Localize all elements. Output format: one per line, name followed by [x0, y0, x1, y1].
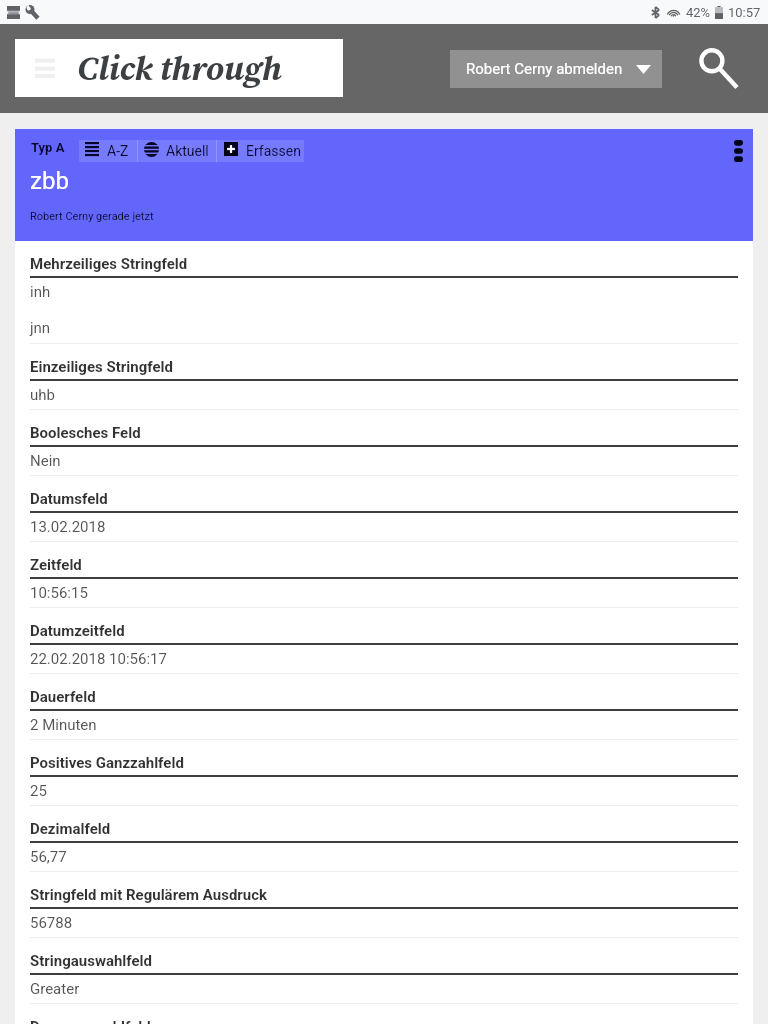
staticText: 22.02.2018 10:56:17	[30, 650, 167, 668]
staticText: jnn	[30, 319, 51, 337]
staticText: 56788	[30, 914, 73, 932]
staticText: Erfassen	[246, 143, 301, 159]
staticText: Datumzeitfeld	[30, 622, 125, 640]
staticText: Dauerauswahlfeld	[30, 1018, 151, 1024]
staticText: 25	[30, 782, 47, 800]
staticText: 10:56:15	[30, 584, 88, 602]
button[interactable]: A-Z	[79, 140, 137, 162]
staticText: Robert Cerny abmelden	[466, 60, 623, 78]
button[interactable]: Aktuell	[138, 140, 216, 162]
other: Developer options	[25, 5, 40, 20]
other: Notification	[7, 6, 20, 19]
staticText: Dauerfeld	[30, 688, 96, 706]
staticText: A-Z	[107, 143, 129, 159]
button[interactable]: Search	[695, 44, 745, 94]
button[interactable]: More options	[721, 129, 751, 162]
button[interactable]: Erfassen	[217, 140, 304, 162]
other: Bluetooth	[651, 6, 660, 19]
staticText: uhb	[30, 386, 55, 404]
other: Wi-Fi	[666, 6, 681, 17]
staticText: inh	[30, 283, 51, 301]
staticText: Zeitfeld	[30, 556, 82, 574]
staticText: 13.02.2018	[30, 518, 106, 536]
staticText: Robert Cerny gerade jetzt	[30, 210, 154, 223]
staticText: Click through	[78, 45, 283, 92]
button[interactable]: Robert Cerny abmelden	[450, 50, 662, 88]
staticText: Einzeiliges Stringfeld	[30, 358, 173, 376]
staticText: zbb	[30, 167, 69, 195]
staticText: 2 Minuten	[30, 716, 97, 734]
staticText: 42%	[686, 5, 711, 20]
staticText: Stringauswahlfeld	[30, 952, 153, 970]
staticText: Dezimalfeld	[30, 820, 111, 838]
staticText: Aktuell	[166, 143, 209, 159]
other: Menu	[35, 58, 55, 78]
staticText: Positives Ganzzahlfeld	[30, 754, 184, 772]
staticText: Stringfeld mit Regulärem Ausdruck	[30, 886, 268, 904]
staticText: Nein	[30, 452, 61, 470]
staticText: 56,77	[30, 848, 67, 866]
staticText: Greater	[30, 980, 80, 998]
button[interactable]: Menu	[15, 39, 343, 97]
staticText: 10:57	[728, 5, 761, 20]
staticText: Typ A	[31, 140, 65, 155]
staticText: Datumsfeld	[30, 490, 108, 508]
staticText: Mehrzeiliges Stringfeld	[30, 255, 188, 273]
staticText: Boolesches Feld	[30, 424, 141, 442]
